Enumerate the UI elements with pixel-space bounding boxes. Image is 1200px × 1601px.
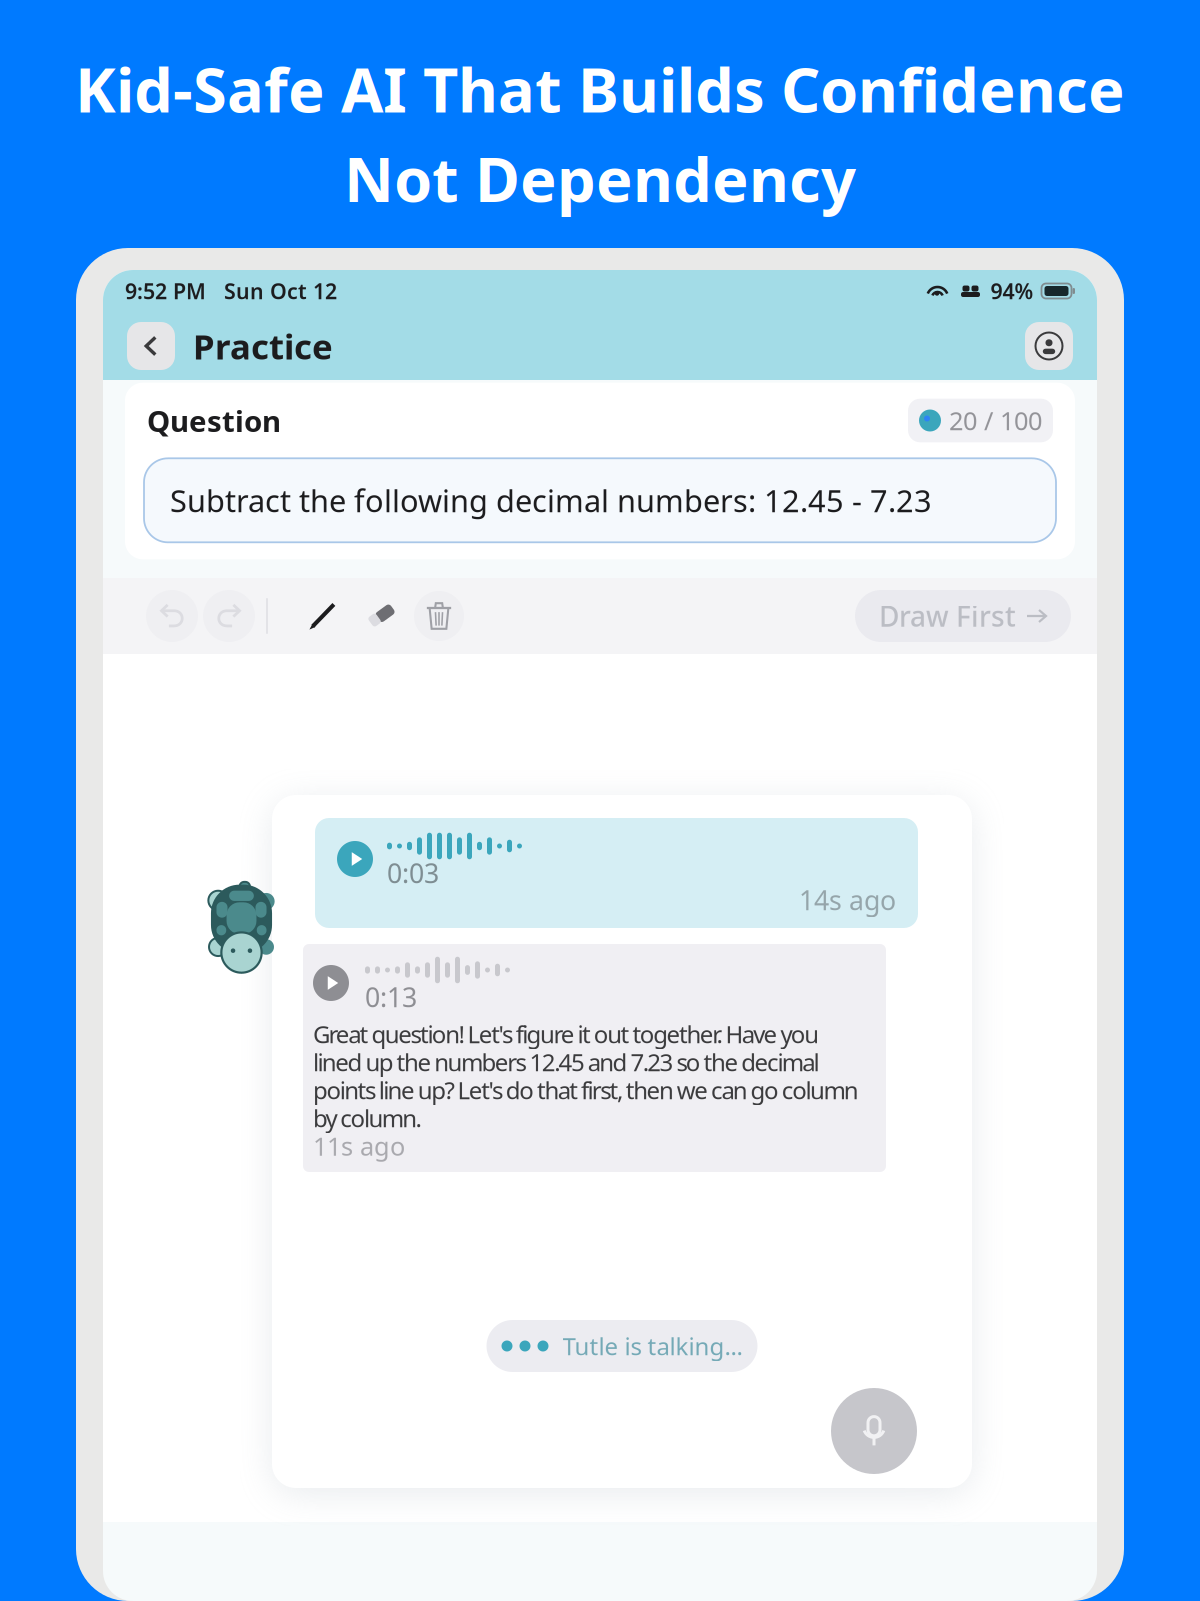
staticText: 0:03	[387, 855, 439, 891]
staticText: Draw First	[879, 597, 1016, 635]
button[interactable]: Redo	[203, 590, 255, 642]
staticText: Tutle is talking...	[562, 1330, 742, 1362]
staticText: Great question! Let's figure it out toge…	[313, 1018, 819, 1050]
button[interactable]: Pen	[300, 593, 346, 639]
staticText: Not Dependency	[344, 137, 856, 219]
staticText: 14s ago	[799, 882, 896, 918]
button[interactable]: Account	[1025, 322, 1073, 370]
staticText: lined up the numbers 12.45 and 7.23 so t…	[313, 1046, 820, 1078]
button[interactable]: Eraser	[358, 593, 404, 639]
staticText: 9:52 PM	[125, 277, 206, 305]
staticText: Practice	[193, 323, 333, 369]
staticText: 20 / 100	[949, 404, 1042, 437]
staticText: 94%	[984, 277, 1033, 305]
staticText: Kid-Safe AI That Builds Confidence	[75, 48, 1125, 129]
staticText: 11s ago	[313, 1129, 405, 1163]
staticText: Subtract the following decimal numbers: …	[170, 480, 932, 521]
staticText: points line up? Let's do that first, the…	[313, 1074, 859, 1106]
button[interactable]: Back	[127, 322, 175, 370]
button[interactable]: Undo	[146, 590, 198, 642]
staticText: 0:13	[365, 979, 417, 1015]
staticText: by column.	[313, 1102, 422, 1134]
staticText: Question	[147, 401, 281, 440]
button[interactable]: Draw First	[855, 590, 1071, 642]
button[interactable]: Record	[831, 1388, 917, 1474]
staticText: Sun Oct 12	[206, 277, 337, 305]
button[interactable]: Clear	[414, 591, 464, 641]
